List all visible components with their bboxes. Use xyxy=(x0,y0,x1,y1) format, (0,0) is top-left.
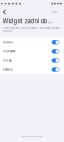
button[interactable]: Poznámky xyxy=(0,47,64,56)
staticText: Počasí xyxy=(3,59,12,62)
staticText: Poznámky xyxy=(3,50,15,53)
staticText: Vyberte aplikace, které se zobrazí jako … xyxy=(3,27,60,32)
button[interactable]: Back xyxy=(0,7,9,16)
staticText: Hudba xyxy=(3,41,12,44)
button[interactable]: Upravit xyxy=(49,7,59,16)
button[interactable]: Hudba xyxy=(0,38,64,47)
staticText: Kamera xyxy=(3,68,12,71)
staticText: Widget zadní ob… xyxy=(3,18,53,25)
button[interactable]: Počasí xyxy=(0,56,64,65)
staticText: Upravit xyxy=(50,10,58,13)
button[interactable]: Kamera xyxy=(0,65,64,74)
